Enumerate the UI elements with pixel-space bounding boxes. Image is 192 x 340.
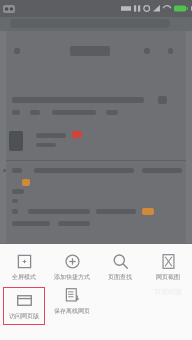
button[interactable]: 页面查找 bbox=[96, 253, 144, 281]
button[interactable]: 添加快捷方式 bbox=[48, 253, 96, 281]
button[interactable]: 保存离线网页 bbox=[48, 287, 96, 315]
staticText: 全屏模式 bbox=[12, 273, 36, 281]
staticText: 页面查找 bbox=[108, 273, 132, 281]
staticText: 访问网页版 bbox=[9, 312, 39, 320]
button[interactable]: 访问网页版 bbox=[3, 287, 45, 325]
staticText: 保存离线网页 bbox=[54, 307, 90, 315]
staticText: 百度经验 bbox=[154, 287, 182, 296]
button[interactable]: 全屏模式 bbox=[0, 253, 48, 281]
staticText: 添加快捷方式 bbox=[54, 273, 90, 281]
button[interactable]: 网页截图 bbox=[144, 253, 192, 281]
staticText: 网页截图 bbox=[156, 273, 180, 281]
